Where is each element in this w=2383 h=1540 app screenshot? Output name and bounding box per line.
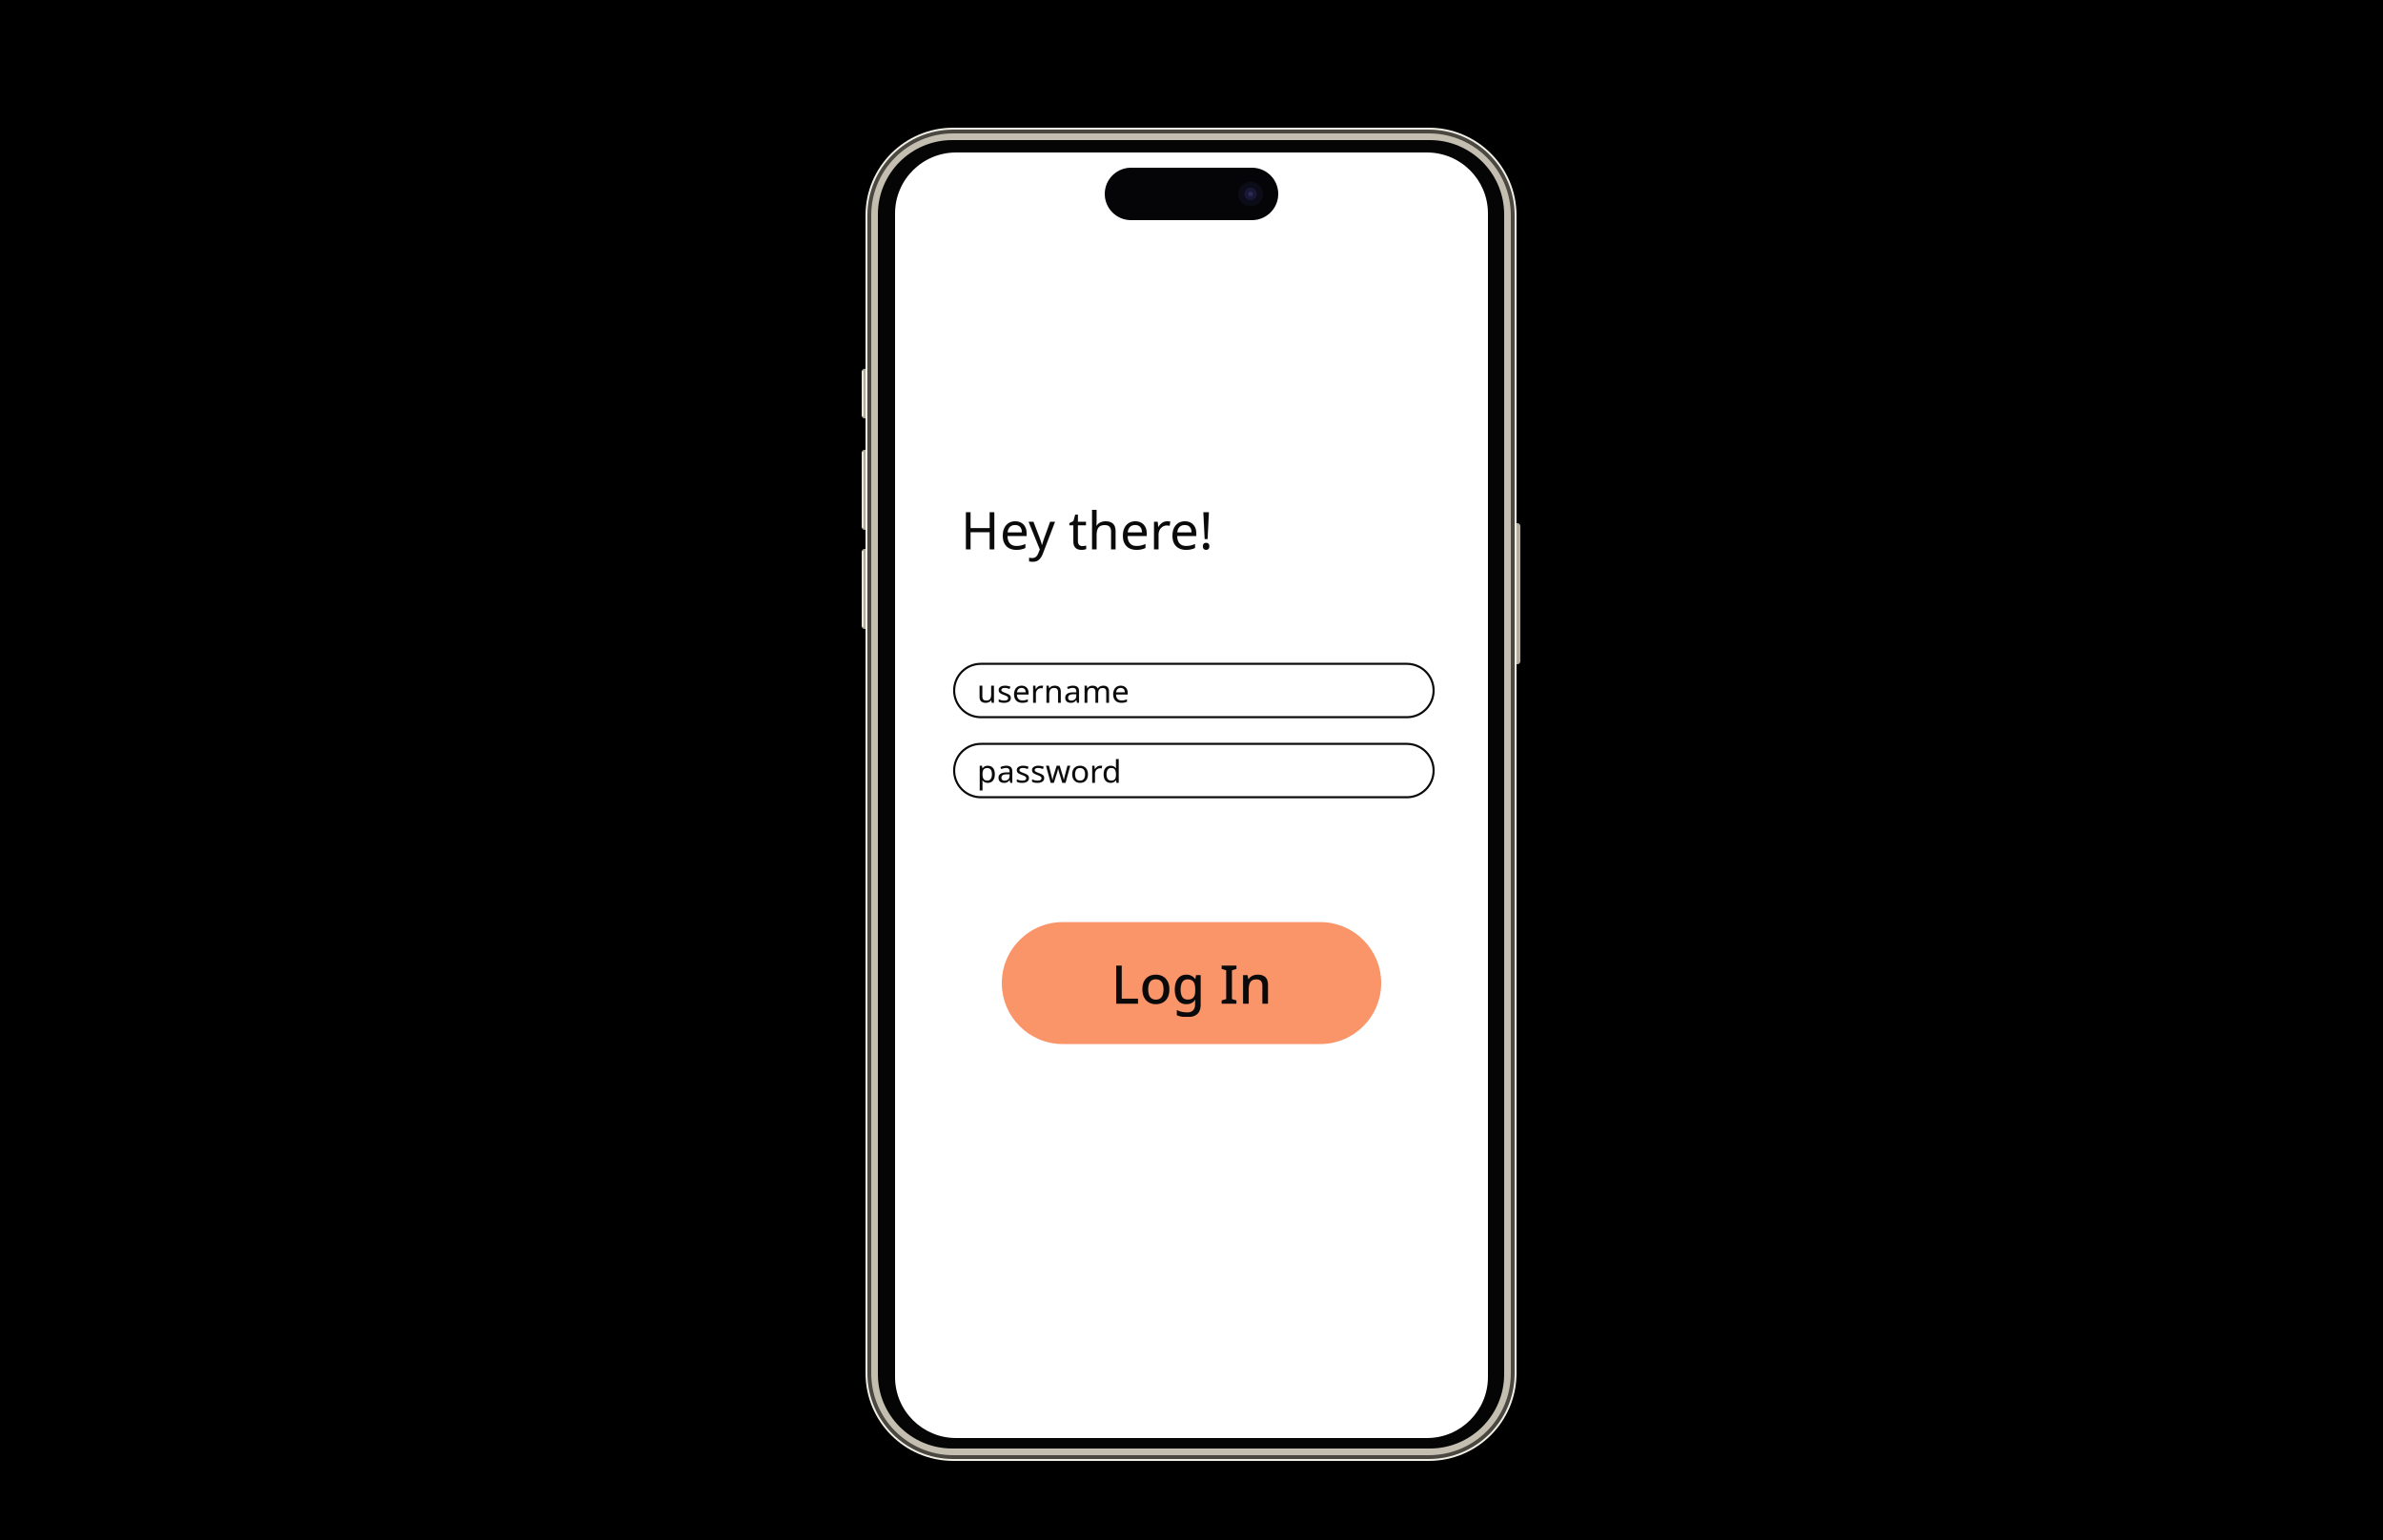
button[interactable]: Action button — [862, 369, 870, 418]
staticText: Log In — [1111, 948, 1272, 1019]
button[interactable]: Side button — [1512, 523, 1520, 664]
button[interactable]: username — [954, 664, 1434, 717]
staticText: Hey there! — [961, 495, 1213, 564]
button[interactable]: password — [954, 744, 1434, 797]
button[interactable]: Log In — [1002, 922, 1381, 1044]
button[interactable]: Volume down — [862, 549, 870, 629]
button[interactable]: Volume up — [862, 450, 870, 530]
staticText: username — [977, 669, 1130, 712]
staticText: password — [977, 750, 1122, 792]
